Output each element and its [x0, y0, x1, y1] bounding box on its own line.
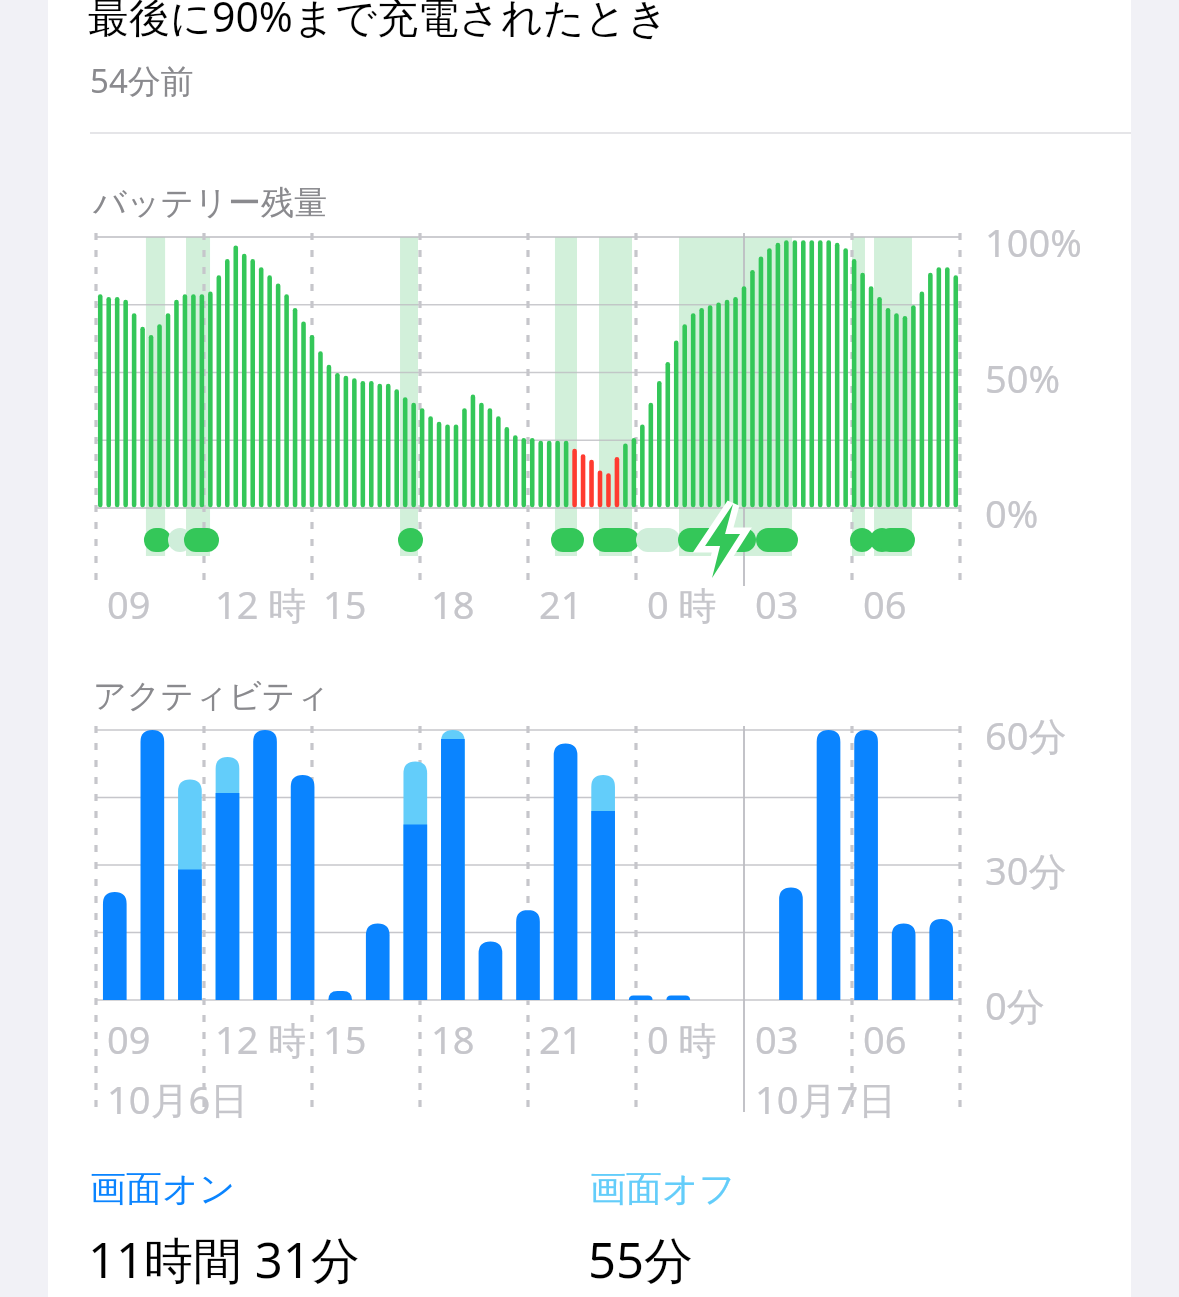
staticText: アクティビティ	[93, 675, 330, 717]
other: Charging	[700, 506, 780, 576]
staticText: 最後に90%まで充電されたとき	[88, 0, 669, 44]
staticText: 0%	[985, 487, 1039, 539]
staticText: 21	[539, 1013, 583, 1065]
staticText: 画面オフ	[590, 1166, 736, 1211]
staticText: 55分	[588, 1226, 694, 1293]
staticText: 60分	[985, 709, 1067, 761]
staticText: 15	[323, 578, 367, 630]
staticText: 50%	[985, 352, 1061, 404]
staticText: 06	[863, 578, 907, 630]
staticText: 0 時	[647, 1013, 717, 1065]
staticText: 09	[107, 1013, 151, 1065]
staticText: 09	[107, 578, 151, 630]
staticText: バッテリー残量	[93, 182, 328, 224]
staticText: 0分	[985, 979, 1045, 1031]
staticText: 18	[431, 578, 475, 630]
staticText: 03	[755, 1013, 799, 1065]
staticText: 10月7日	[755, 1073, 897, 1125]
staticText: 0 時	[647, 578, 717, 630]
staticText: 30分	[985, 844, 1067, 896]
button[interactable]	[48, 0, 1131, 1297]
staticText: 11時間 31分	[88, 1226, 360, 1293]
staticText: 06	[863, 1013, 907, 1065]
staticText: 21	[539, 578, 583, 630]
staticText: 15	[323, 1013, 367, 1065]
staticText: 18	[431, 1013, 475, 1065]
button[interactable]: 画面オフ	[588, 1160, 1018, 1290]
staticText: 54分前	[90, 58, 194, 103]
staticText: 画面オン	[90, 1166, 236, 1211]
staticText: 10月6日	[107, 1073, 249, 1125]
staticText: 03	[755, 578, 799, 630]
staticText: 100%	[985, 216, 1082, 268]
button[interactable]: 画面オン	[88, 1160, 518, 1290]
staticText: 12 時	[215, 1013, 307, 1065]
staticText: 12 時	[215, 578, 307, 630]
